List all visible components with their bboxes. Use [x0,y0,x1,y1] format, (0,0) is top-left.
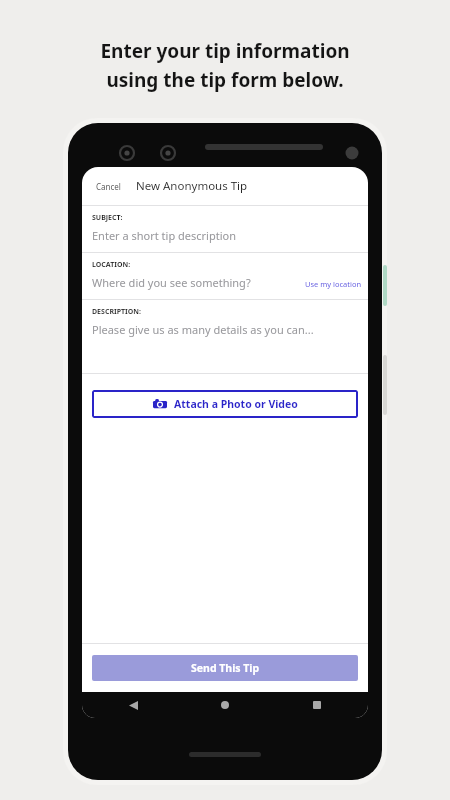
staticText: Where did you see something? [92,275,251,290]
button[interactable]: Use my location [299,277,368,291]
button[interactable]: Send This Tip [92,655,358,681]
button[interactable]: Recent apps [306,694,328,716]
button[interactable]: Home [214,694,236,716]
staticText: using the tip form below. [106,67,344,93]
button[interactable]: Cancel [90,175,127,198]
button[interactable]: SUBJECT: [82,206,368,252]
staticText: SUBJECT: [92,213,123,223]
staticText: Use my location [305,279,362,289]
staticText: Enter your tip information [100,38,350,64]
staticText: DESCRIPTION: [92,307,142,317]
button[interactable]: Camera [92,390,358,418]
button[interactable]: DESCRIPTION: [82,300,368,373]
staticText: Please give us as many details as you ca… [92,322,314,337]
button[interactable]: Back [122,694,144,716]
staticText: Attach a Photo or Video [174,397,298,411]
staticText: Send This Tip [191,661,260,675]
other: Camera [153,397,167,411]
staticText: LOCATION: [92,260,131,270]
button[interactable]: LOCATION: [82,253,368,299]
staticText: Enter a short tip description [92,228,236,243]
staticText: New Anonymous Tip [136,178,248,194]
staticText: Cancel [96,181,121,192]
